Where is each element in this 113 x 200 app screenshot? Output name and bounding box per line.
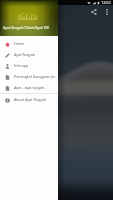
staticText: Penangkal Gangguan Jin: [14, 74, 56, 79]
staticText: About Ayat Ruqyah: [14, 97, 47, 102]
button[interactable]: Penangkal Gangguan Jin: [0, 71, 58, 82]
staticText: Ayat Ruqyah (Tabel/Ayat 99): [3, 25, 49, 30]
button[interactable]: More options: [101, 6, 113, 18]
button[interactable]: Home: [0, 38, 58, 49]
staticText: Info app: [14, 63, 29, 68]
button[interactable]: Info app: [0, 60, 58, 71]
button[interactable]: Share: [87, 5, 101, 19]
staticText: 12:52: [101, 0, 111, 5]
staticText: Ayat - ayat ruqyah: [14, 85, 45, 90]
button[interactable]: About Ayat Ruqyah: [0, 94, 58, 105]
button[interactable]: Ayat - ayat ruqyah: [0, 82, 58, 93]
button[interactable]: Ayat Ruqyah: [0, 49, 58, 60]
staticText: Ayat Ruqyah: [14, 52, 36, 57]
staticText: Home: [14, 41, 25, 46]
